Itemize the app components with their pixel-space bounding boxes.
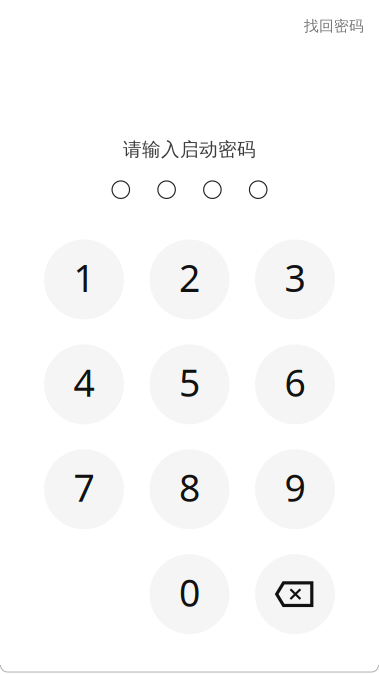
staticText: 1 bbox=[73, 253, 94, 302]
staticText: 8 bbox=[179, 462, 200, 512]
staticText: 0 bbox=[179, 567, 200, 617]
button[interactable]: 6 bbox=[255, 344, 335, 424]
button[interactable]: 找回密码 bbox=[296, 10, 372, 42]
button[interactable]: 3 bbox=[255, 239, 335, 319]
button[interactable]: 0 bbox=[149, 554, 229, 634]
staticText: 9 bbox=[284, 462, 305, 512]
staticText: 找回密码 bbox=[304, 17, 364, 35]
button[interactable]: 8 bbox=[149, 449, 229, 529]
staticText: 5 bbox=[179, 358, 200, 407]
staticText: 6 bbox=[284, 358, 305, 407]
staticText: 请输入启动密码 bbox=[123, 138, 256, 161]
button[interactable]: 2 bbox=[149, 239, 229, 319]
button[interactable]: 1 bbox=[44, 239, 124, 319]
button[interactable]: 5 bbox=[149, 344, 229, 424]
staticText: 2 bbox=[179, 253, 200, 302]
staticText: 7 bbox=[73, 462, 94, 512]
staticText: 4 bbox=[73, 358, 94, 407]
button[interactable]: 4 bbox=[44, 344, 124, 424]
staticText: 3 bbox=[284, 253, 305, 302]
button[interactable]: Delete bbox=[255, 554, 335, 634]
button[interactable]: 9 bbox=[255, 449, 335, 529]
button[interactable]: 7 bbox=[44, 449, 124, 529]
